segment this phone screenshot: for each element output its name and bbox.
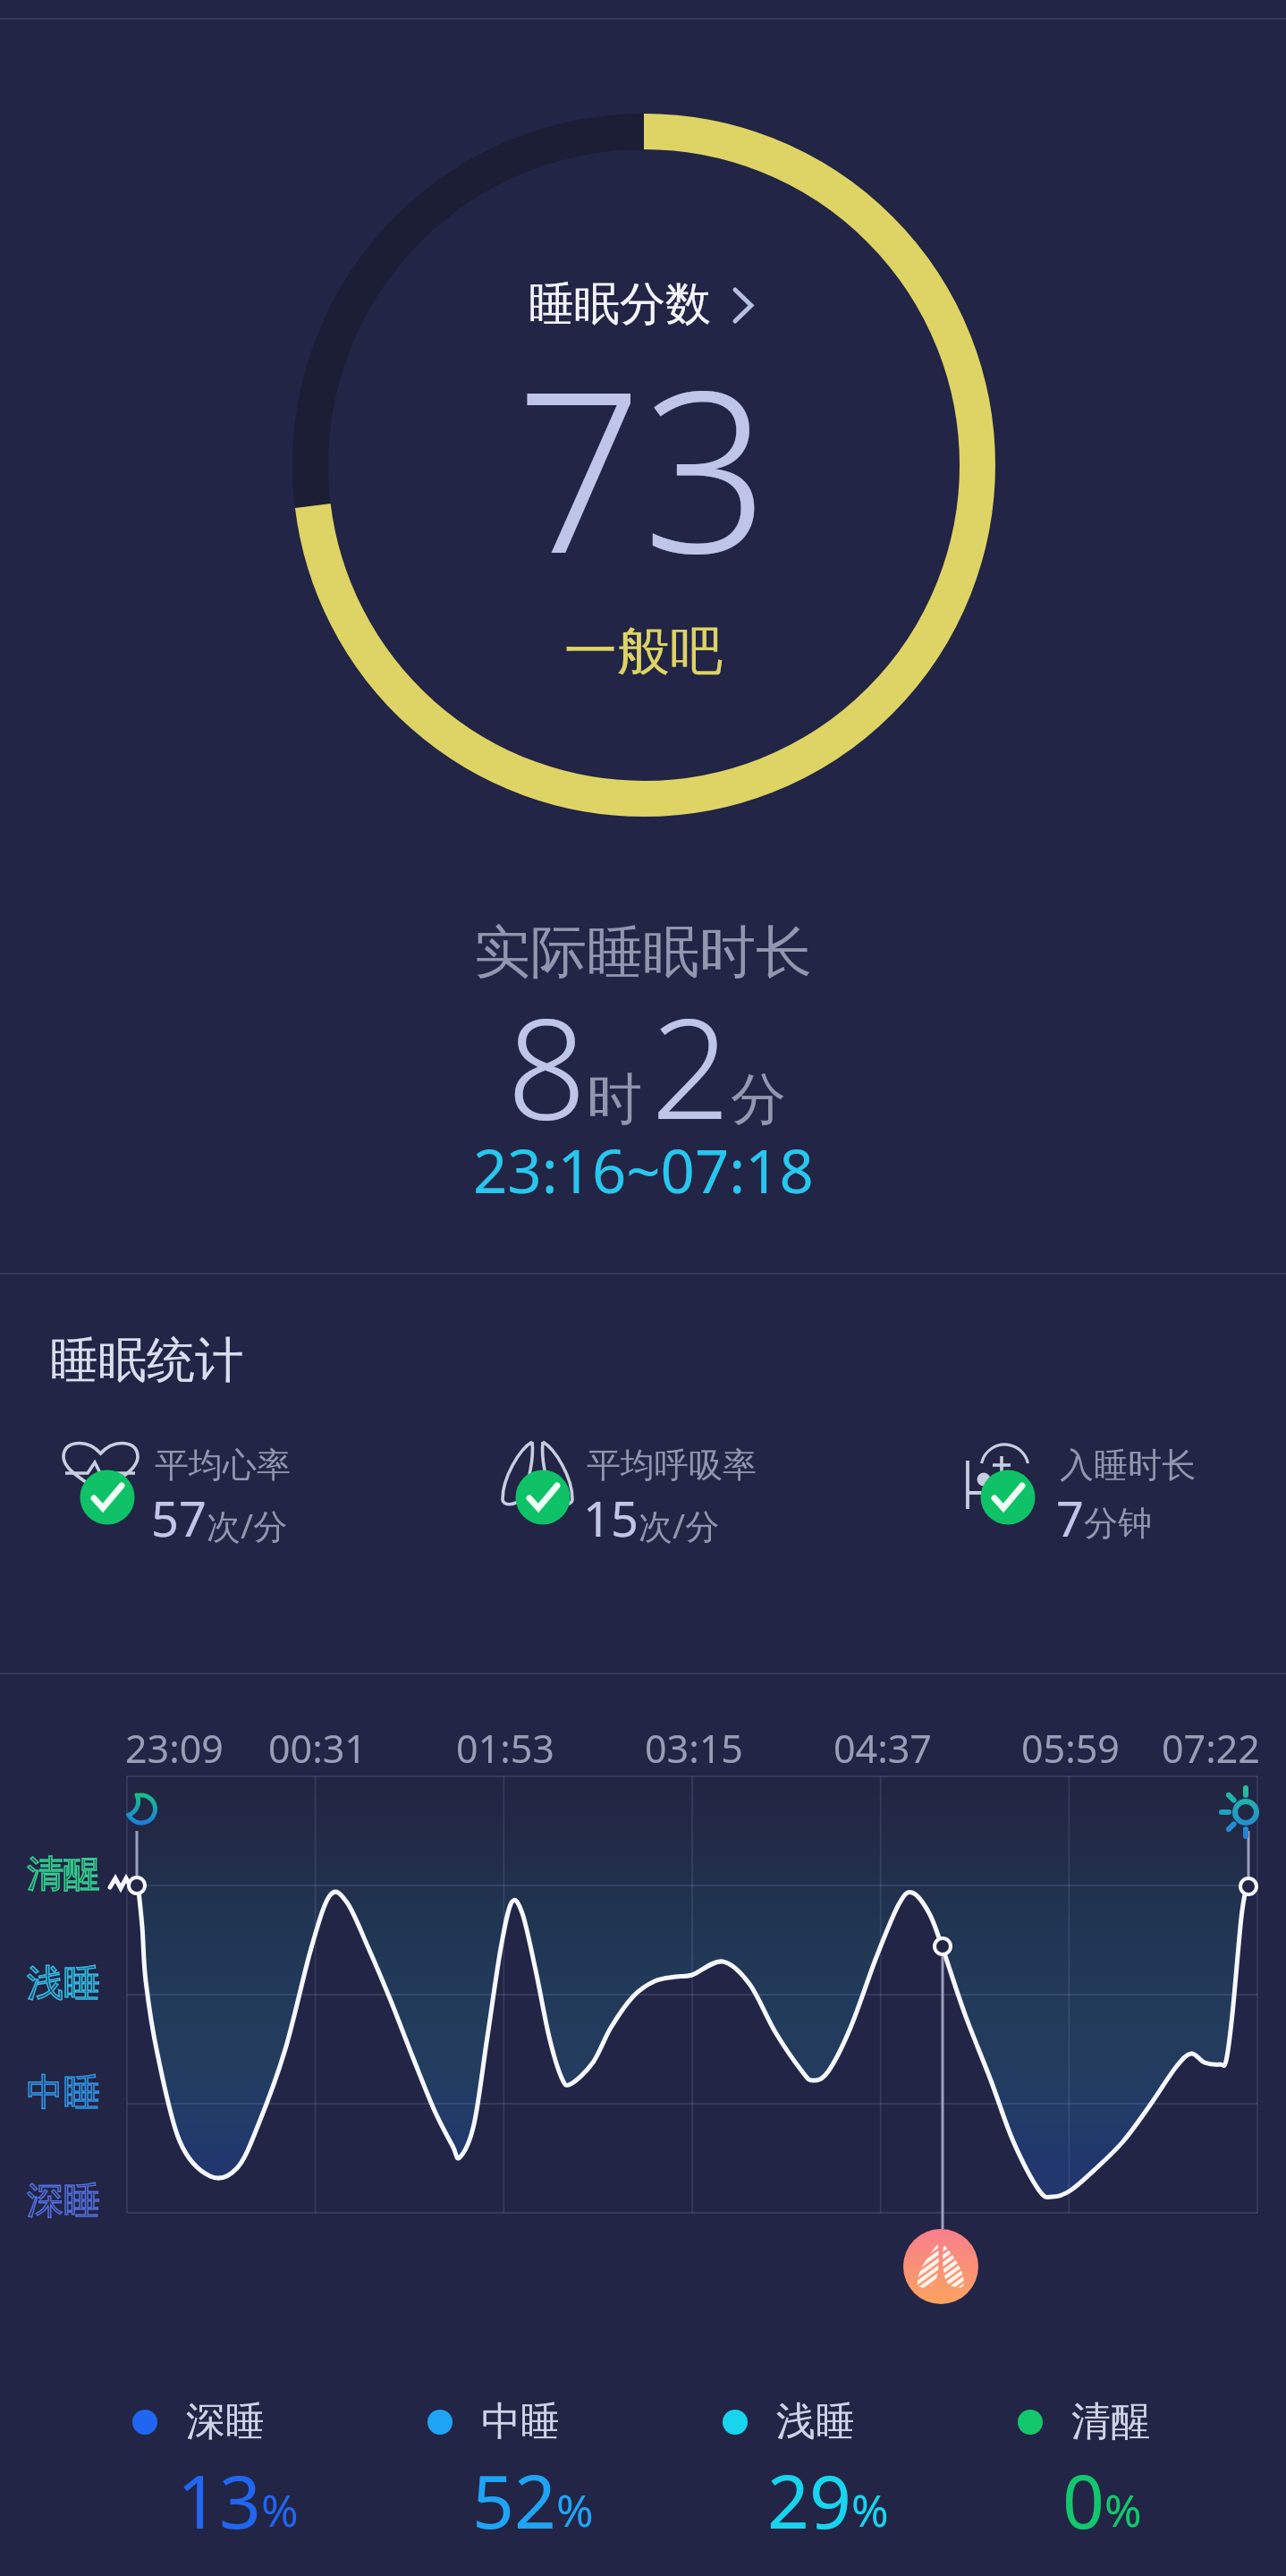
- staticText: 73: [516, 316, 770, 618]
- staticText: 浅睡: [27, 1961, 100, 2007]
- staticText: 深睡: [186, 2397, 265, 2446]
- staticText: 分钟: [1084, 1502, 1152, 1545]
- staticText: 深睡: [27, 2178, 100, 2224]
- staticText: 清醒: [1071, 2397, 1150, 2446]
- staticText: 00:31: [268, 1722, 367, 1775]
- staticText: 中睡: [481, 2397, 560, 2446]
- staticText: 平均心率: [155, 1444, 291, 1487]
- staticText: 清醒: [27, 1851, 100, 1898]
- staticText: 05:59: [1021, 1722, 1120, 1775]
- staticText: 03:15: [645, 1722, 743, 1775]
- staticText: 23:16~07:18: [473, 1129, 814, 1210]
- staticText: 浅睡: [27, 1961, 100, 2007]
- staticText: 清醒: [27, 1851, 100, 1898]
- staticText: 平均呼吸率: [587, 1444, 757, 1487]
- staticText: 浅睡: [776, 2397, 855, 2446]
- staticText: 次/分: [639, 1502, 720, 1548]
- staticText: 时: [587, 1064, 642, 1134]
- staticText: 分: [731, 1064, 786, 1134]
- staticText: %: [261, 2479, 299, 2540]
- staticText: 7: [1056, 1485, 1084, 1551]
- staticText: %: [851, 2479, 889, 2540]
- staticText: 次/分: [207, 1502, 288, 1548]
- staticText: 入睡时长: [1060, 1444, 1196, 1487]
- staticText: 深睡: [27, 2178, 100, 2224]
- staticText: %: [556, 2479, 594, 2540]
- staticText: 29: [767, 2450, 851, 2550]
- staticText: 57: [151, 1485, 207, 1551]
- staticText: 15: [583, 1485, 639, 1551]
- staticText: 04:37: [833, 1722, 932, 1775]
- staticText: %: [1104, 2479, 1142, 2540]
- staticText: 睡眠分数: [529, 275, 711, 333]
- staticText: 2: [651, 970, 731, 1159]
- button[interactable]: 睡眠分数: [529, 275, 757, 333]
- staticText: 中睡: [27, 2070, 100, 2116]
- staticText: 01:53: [456, 1722, 554, 1775]
- staticText: 13: [177, 2450, 261, 2550]
- staticText: 实际睡眠时长: [474, 917, 812, 987]
- staticText: 52: [472, 2450, 556, 2550]
- staticText: 23:09: [125, 1722, 224, 1775]
- staticText: 8: [507, 970, 587, 1159]
- staticText: 中睡: [27, 2070, 100, 2116]
- staticText: 睡眠统计: [50, 1330, 243, 1391]
- staticText: 07:22: [1162, 1722, 1260, 1775]
- staticText: 0: [1062, 2450, 1104, 2550]
- staticText: 一般吧: [564, 618, 723, 684]
